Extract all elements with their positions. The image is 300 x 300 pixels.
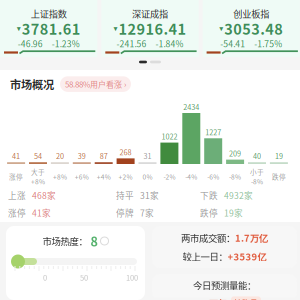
staticText: 停牌 — [116, 206, 134, 219]
staticText: ▾ — [113, 24, 117, 33]
button[interactable]: 深证成指 — [101, 0, 199, 57]
staticText: 市场概况 — [10, 76, 54, 92]
staticText: 持平 — [116, 189, 134, 201]
staticText: 创业板指 — [233, 7, 269, 20]
staticText: -1.84% — [155, 37, 183, 50]
staticText: 小于 — [250, 167, 264, 177]
staticText: 3053.48 — [224, 18, 283, 39]
staticText: 54 — [34, 151, 42, 161]
staticText: 209 — [229, 148, 241, 159]
staticText: 1022 — [161, 131, 177, 142]
staticText: +8% — [31, 177, 45, 186]
staticText: -1.23% — [52, 37, 80, 50]
staticText: 41家 — [32, 206, 51, 219]
staticText: 19 — [275, 151, 283, 161]
staticText: 1.7万亿 — [235, 231, 268, 244]
staticText: 较昨日 — [234, 297, 258, 300]
staticText: 50 — [80, 272, 88, 283]
staticText: -1.75% — [254, 37, 282, 50]
button[interactable]: 今日预测量能： — [152, 274, 297, 300]
staticText: 跌停 — [200, 206, 218, 219]
staticText: 40 — [253, 151, 261, 161]
staticText: 41 — [12, 151, 20, 161]
staticText: 7家 — [140, 206, 154, 219]
staticText: -8% — [251, 177, 263, 186]
button[interactable]: 两市成交额： — [152, 226, 297, 268]
staticText: -8% — [229, 172, 241, 181]
staticText: +8% — [53, 172, 67, 181]
staticText: 87 — [100, 151, 108, 161]
staticText: 1227 — [205, 127, 221, 137]
staticText: ▾ — [219, 24, 223, 33]
staticText: 20 — [56, 151, 64, 161]
staticText: 上证指数 — [31, 7, 67, 20]
staticText: 0.70万亿 — [188, 296, 227, 300]
staticText: 2434 — [183, 101, 199, 112]
staticText: 12916.41 — [118, 18, 186, 39]
staticText: 3781.61 — [22, 18, 81, 39]
staticText: 涨停 — [9, 172, 23, 181]
staticText: 今日预测量能： — [193, 278, 256, 292]
staticText: 较上一日： — [182, 249, 227, 263]
staticText: 跌停 — [272, 172, 286, 181]
staticText: 涨停 — [8, 206, 26, 219]
staticText: -54.41 — [220, 37, 245, 50]
staticText: +3539亿 — [227, 249, 266, 263]
staticText: 58.88%用户看涨 — [65, 78, 122, 90]
staticText: 39 — [78, 151, 86, 161]
staticText: 两市成交额： — [181, 231, 235, 244]
staticText: 市场热度： — [42, 234, 87, 248]
staticText: 4932家 — [224, 189, 253, 201]
staticText: 468家 — [32, 189, 56, 201]
staticText: 深证成指 — [132, 7, 168, 20]
staticText: -2% — [163, 172, 175, 181]
staticText: 31家 — [140, 189, 159, 201]
staticText: 268 — [120, 147, 132, 157]
staticText: 0 — [43, 272, 47, 283]
staticText: ▾ — [17, 24, 21, 33]
button[interactable]: 58.88%用户看涨 — [60, 76, 131, 92]
staticText: -4% — [185, 172, 197, 181]
button[interactable]: 上证指数 — [0, 0, 97, 57]
staticText: 下跌 — [200, 189, 218, 201]
staticText: -6% — [207, 172, 219, 181]
staticText: 8 — [90, 232, 97, 250]
staticText: 19家 — [224, 206, 243, 219]
staticText: 100 — [126, 272, 138, 283]
staticText: 0% — [142, 172, 152, 181]
staticText: -241.56 — [116, 37, 146, 50]
staticText: 上涨 — [8, 189, 26, 201]
button[interactable]: 创业板指 — [203, 0, 300, 57]
staticText: +4% — [97, 172, 111, 181]
button[interactable]: 市场热度： — [6, 226, 145, 300]
staticText: 大于 — [31, 167, 45, 177]
staticText: +2% — [119, 172, 133, 181]
staticText: › — [124, 78, 126, 90]
staticText: +6% — [75, 172, 89, 181]
staticText: 31 — [143, 151, 151, 161]
staticText: -46.96 — [18, 37, 43, 50]
